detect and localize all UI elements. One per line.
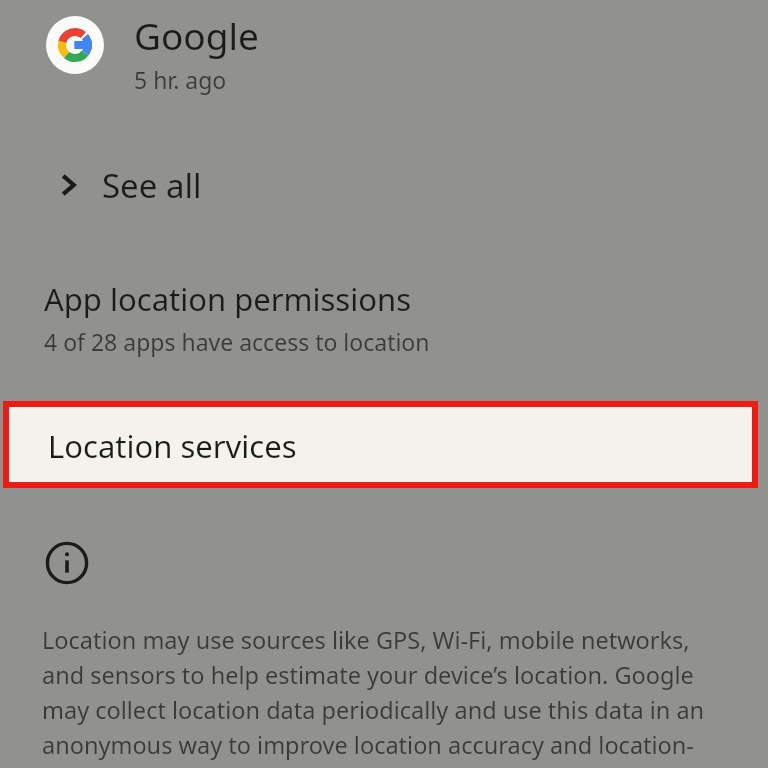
- button[interactable]: See all: [0, 152, 768, 218]
- other: Information: [45, 541, 89, 585]
- other: Google: [46, 16, 104, 74]
- button[interactable]: App location permissions: [0, 272, 768, 367]
- staticText: Google: [134, 10, 259, 60]
- button[interactable]: Location services: [9, 407, 752, 482]
- staticText: 4 of 28 apps have access to location: [44, 326, 430, 357]
- staticText: 5 hr. ago: [134, 64, 227, 95]
- staticText: See all: [102, 163, 202, 208]
- staticText: Location services: [48, 425, 297, 467]
- staticText: Location may use sources like GPS, Wi-Fi…: [42, 624, 710, 768]
- button[interactable]: Google: [46, 12, 229, 97]
- staticText: App location permissions: [44, 278, 411, 320]
